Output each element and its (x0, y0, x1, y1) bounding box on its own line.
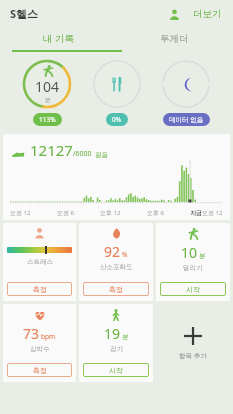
staticText: 분 (45, 96, 51, 104)
button[interactable]: 104 (19, 56, 75, 128)
button[interactable]: 측정 (7, 363, 72, 377)
staticText: 12127 (30, 140, 73, 160)
staticText: bpm (41, 332, 56, 341)
button[interactable]: 투게더 (116, 27, 233, 50)
staticText: 73 (23, 324, 40, 343)
button[interactable]: 73 (3, 304, 76, 382)
staticText: 113% (39, 115, 56, 124)
staticText: 달리기 (183, 264, 203, 272)
button[interactable]: 스트레스 (3, 223, 76, 301)
staticText: 데이터 없음 (169, 115, 204, 124)
button[interactable]: 12127 (3, 134, 230, 220)
staticText: 10 (181, 243, 198, 262)
staticText: 걷기 (110, 345, 123, 353)
button[interactable]: 0% (89, 56, 145, 128)
staticText: 92 (104, 242, 121, 261)
button[interactable]: 10 (156, 223, 230, 301)
staticText: 산소포화도 (100, 263, 133, 271)
button[interactable]: 시작 (83, 363, 149, 377)
staticText: /6000 (73, 149, 92, 159)
staticText: 0% (112, 115, 122, 124)
staticText: 분 (122, 333, 129, 341)
staticText: % (122, 250, 128, 259)
staticText: 오전 6 (57, 209, 74, 217)
staticText: 19 (104, 324, 121, 343)
staticText: 더보기 (193, 8, 222, 20)
staticText: 104 (35, 77, 60, 96)
button[interactable]: 19 (79, 304, 153, 382)
staticText: 스트레스 (27, 258, 53, 266)
staticText: 측정 (33, 366, 47, 375)
staticText: 분 (199, 252, 206, 260)
staticText: 시작 (186, 285, 200, 294)
staticText: 항목 추가 (179, 351, 207, 360)
staticText: 지금 (190, 209, 202, 217)
staticText: 측정 (109, 285, 123, 294)
staticText: 오전 12 (10, 209, 31, 217)
staticText: 걸음 (95, 151, 108, 159)
staticText: 시작 (109, 366, 123, 375)
button[interactable]: 내 기록 (0, 27, 116, 50)
staticText: 심박수 (30, 345, 50, 353)
button[interactable]: 시작 (160, 282, 226, 296)
button[interactable]: 항목 추가 (156, 304, 230, 382)
button[interactable]: 데이터 없음 (158, 56, 214, 128)
staticText: 오전 12 (202, 209, 223, 217)
button[interactable]: 측정 (7, 282, 72, 296)
button[interactable]: Profile (163, 3, 185, 25)
staticText: 측정 (33, 285, 47, 294)
button[interactable]: 92 (79, 223, 153, 301)
button[interactable]: 더보기 (190, 4, 225, 24)
staticText: S헬스 (10, 6, 39, 21)
staticText: 오후 6 (147, 209, 164, 217)
staticText: 내 기록 (43, 32, 74, 45)
staticText: 오후 12 (100, 209, 121, 217)
staticText: 투게더 (160, 33, 189, 45)
button[interactable]: 측정 (83, 282, 149, 296)
